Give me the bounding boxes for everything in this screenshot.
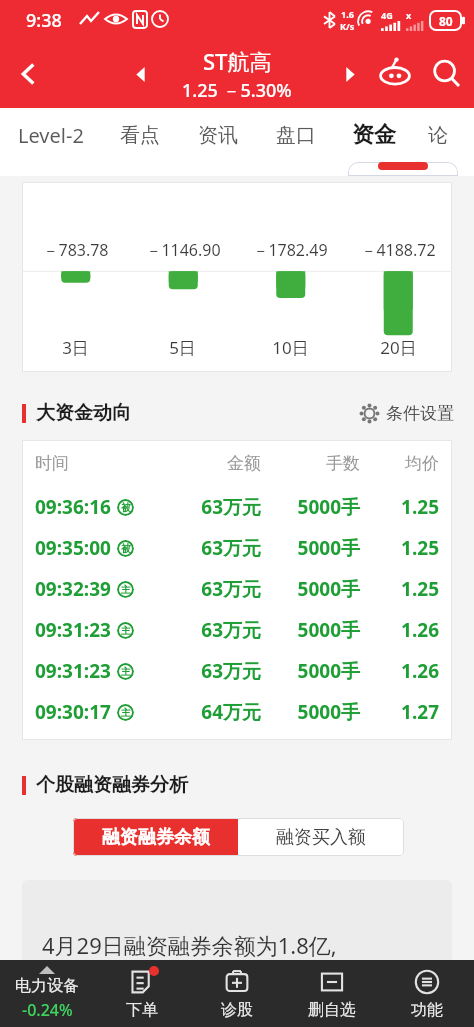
staticText: 融资买入额 (276, 826, 366, 849)
button[interactable]: 看点 (120, 123, 160, 148)
staticText: 09:35:00 (35, 535, 111, 561)
staticText: 63万元 (162, 535, 261, 561)
button[interactable]: ST航高 (182, 46, 292, 103)
staticText: 1.25 (360, 576, 439, 602)
staticText: －1146.90 (145, 239, 221, 261)
staticText: 5000手 (261, 535, 360, 561)
staticText: 4G (381, 9, 393, 21)
button[interactable]: 条件设置 (360, 403, 454, 424)
staticText: 融资融券余额 (102, 826, 210, 849)
staticText: 被 (121, 542, 131, 555)
staticText: 1.25 －5.30% (182, 78, 292, 103)
button[interactable]: 诊股 (189, 960, 284, 1027)
button[interactable]: 09:30:17 (35, 691, 439, 732)
staticText: 09:32:39 (35, 576, 111, 602)
staticText: 删自选 (308, 1000, 356, 1020)
staticText: 被 (121, 501, 131, 514)
staticText: 63万元 (162, 576, 261, 602)
staticText: 5000手 (261, 617, 360, 643)
button[interactable]: 09:36:16 (35, 486, 439, 527)
staticText: －783.78 (42, 239, 109, 261)
staticText: 主 (121, 706, 131, 719)
staticText: 5000手 (261, 576, 360, 602)
staticText: －1782.49 (252, 239, 328, 261)
staticText: 诊股 (221, 1000, 253, 1020)
button[interactable]: 论 (428, 123, 448, 148)
staticText: 1.26 (360, 617, 439, 643)
staticText: 大资金动向 (36, 401, 131, 425)
staticText: 63万元 (162, 494, 261, 520)
staticText: 论 (428, 123, 448, 148)
button[interactable]: Back (0, 45, 58, 103)
staticText: 4月29日融资融券余额为1.8亿, (42, 930, 337, 960)
button[interactable]: 09:31:23 (35, 650, 439, 691)
staticText: 手数 (261, 453, 360, 474)
button[interactable]: Next stock (330, 54, 370, 94)
button[interactable]: 09:32:39 (35, 568, 439, 609)
staticText: 63万元 (162, 617, 261, 643)
staticText: 64万元 (162, 699, 261, 725)
button[interactable]: 融资买入额 (238, 818, 404, 856)
staticText: －4188.72 (360, 239, 436, 261)
staticText: 1.6 (341, 8, 354, 20)
staticText: 5000手 (261, 494, 360, 520)
staticText: 1.26 (360, 658, 439, 684)
button[interactable]: AI assistant (370, 49, 420, 99)
staticText: 资讯 (198, 123, 238, 148)
staticText: 5000手 (261, 658, 360, 684)
staticText: 个股融资融券分析 (36, 773, 188, 797)
staticText: 80 (439, 13, 453, 29)
staticText: 09:36:16 (35, 494, 111, 520)
staticText: 均价 (360, 453, 439, 474)
staticText: 看点 (120, 123, 160, 148)
staticText: 5日 (169, 336, 196, 359)
staticText: 09:31:23 (35, 617, 111, 643)
button[interactable]: 电力设备 (0, 960, 94, 1027)
button[interactable]: Previous stock (118, 52, 162, 96)
staticText: 金额 (162, 453, 261, 474)
staticText: 5000手 (261, 699, 360, 725)
button[interactable]: 09:35:00 (35, 527, 439, 568)
button[interactable]: 盘口 (276, 123, 316, 148)
staticText: 3日 (62, 336, 89, 359)
button[interactable]: Search (420, 47, 474, 101)
staticText: 主 (121, 583, 131, 596)
button[interactable]: 下单 (94, 960, 189, 1027)
staticText: 63万元 (162, 658, 261, 684)
staticText: 1.25 (360, 535, 439, 561)
staticText: 资金 (352, 121, 396, 149)
staticText: 20日 (380, 336, 417, 359)
staticText: 条件设置 (386, 403, 454, 424)
staticText: Level-2 (18, 122, 84, 149)
button[interactable]: Level-2 (18, 122, 84, 149)
staticText: 主 (121, 624, 131, 637)
staticText: 盘口 (276, 123, 316, 148)
button[interactable]: 功能 (379, 960, 474, 1027)
staticText: x (406, 9, 412, 21)
button[interactable]: 资讯 (198, 123, 238, 148)
staticText: 09:30:17 (35, 699, 111, 725)
staticText: 时间 (35, 453, 162, 474)
staticText: 1.25 (360, 494, 439, 520)
staticText: K/s (340, 20, 355, 32)
button[interactable]: 融资融券余额 (73, 818, 238, 856)
staticText: ST航高 (203, 46, 272, 76)
button[interactable]: 删自选 (284, 960, 379, 1027)
staticText: 主 (121, 665, 131, 678)
staticText: 10日 (272, 336, 309, 359)
staticText: 功能 (411, 1000, 443, 1020)
button[interactable]: 09:31:23 (35, 609, 439, 650)
staticText: 9:38 (26, 8, 62, 33)
staticText: 电力设备 (15, 976, 79, 996)
staticText: 09:31:23 (35, 658, 111, 684)
staticText: 1.27 (360, 699, 439, 725)
staticText: -0.24% (22, 999, 73, 1021)
button[interactable]: 资金 (352, 121, 396, 149)
staticText: 下单 (126, 1000, 158, 1020)
